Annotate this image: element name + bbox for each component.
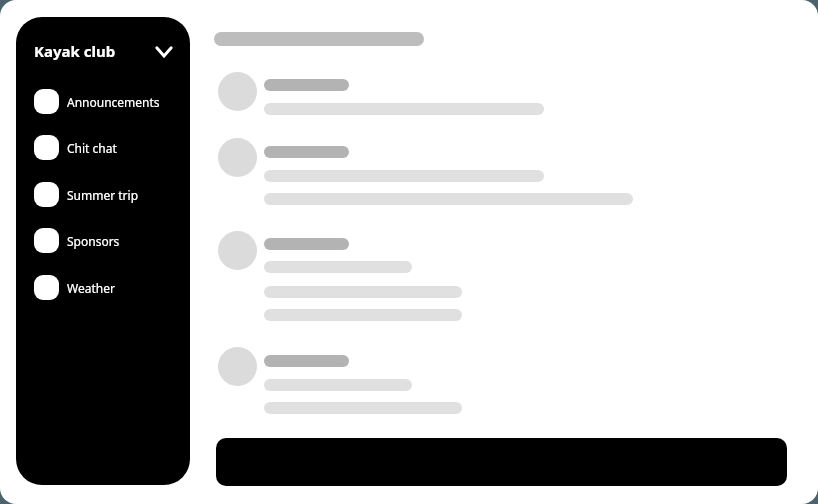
- button[interactable]: Kayak club: [34, 41, 174, 65]
- button[interactable]: Announcements: [34, 89, 160, 114]
- staticText: Announcements: [67, 94, 160, 110]
- button[interactable]: Chit chat: [34, 135, 117, 160]
- staticText: Weather: [67, 280, 115, 296]
- button[interactable]: Summer trip: [34, 182, 139, 207]
- button[interactable]: [216, 438, 787, 486]
- staticText: Chit chat: [67, 140, 117, 156]
- button[interactable]: Sponsors: [34, 228, 120, 253]
- staticText: Summer trip: [67, 187, 139, 203]
- button[interactable]: Weather: [34, 275, 115, 300]
- staticText: Sponsors: [67, 233, 120, 249]
- staticText: Kayak club: [34, 41, 116, 61]
